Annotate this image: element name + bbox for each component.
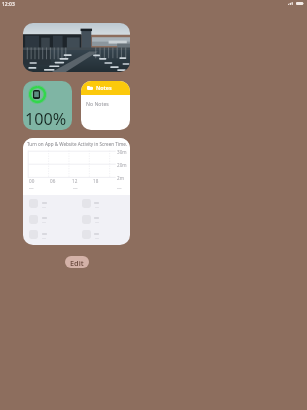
button[interactable]: Battery 100 percent bbox=[23, 81, 72, 130]
staticText: 2m bbox=[117, 175, 124, 181]
button[interactable]: Notes bbox=[81, 81, 130, 130]
staticText: 12 bbox=[72, 178, 78, 184]
staticText: 06 bbox=[50, 178, 56, 184]
staticText: Edit bbox=[70, 258, 84, 268]
staticText: 18 bbox=[93, 178, 99, 184]
button[interactable]: Turn on App & Website Activity in Screen… bbox=[23, 138, 130, 245]
button[interactable]: Photo widget bbox=[23, 23, 130, 72]
staticText: --- bbox=[117, 185, 122, 191]
staticText: 12:03 bbox=[2, 1, 15, 8]
button[interactable]: Edit bbox=[65, 256, 89, 268]
staticText: 20m bbox=[117, 162, 127, 168]
staticText: No Notes bbox=[86, 100, 109, 107]
staticText: Notes bbox=[96, 84, 112, 91]
staticText: 30m bbox=[117, 149, 127, 155]
staticText: --- bbox=[73, 185, 78, 191]
staticText: 00 bbox=[29, 178, 35, 184]
staticText: Turn on App & Website Activity in Screen… bbox=[27, 141, 128, 147]
staticText: 100% bbox=[25, 108, 67, 130]
staticText: --- bbox=[29, 185, 34, 191]
